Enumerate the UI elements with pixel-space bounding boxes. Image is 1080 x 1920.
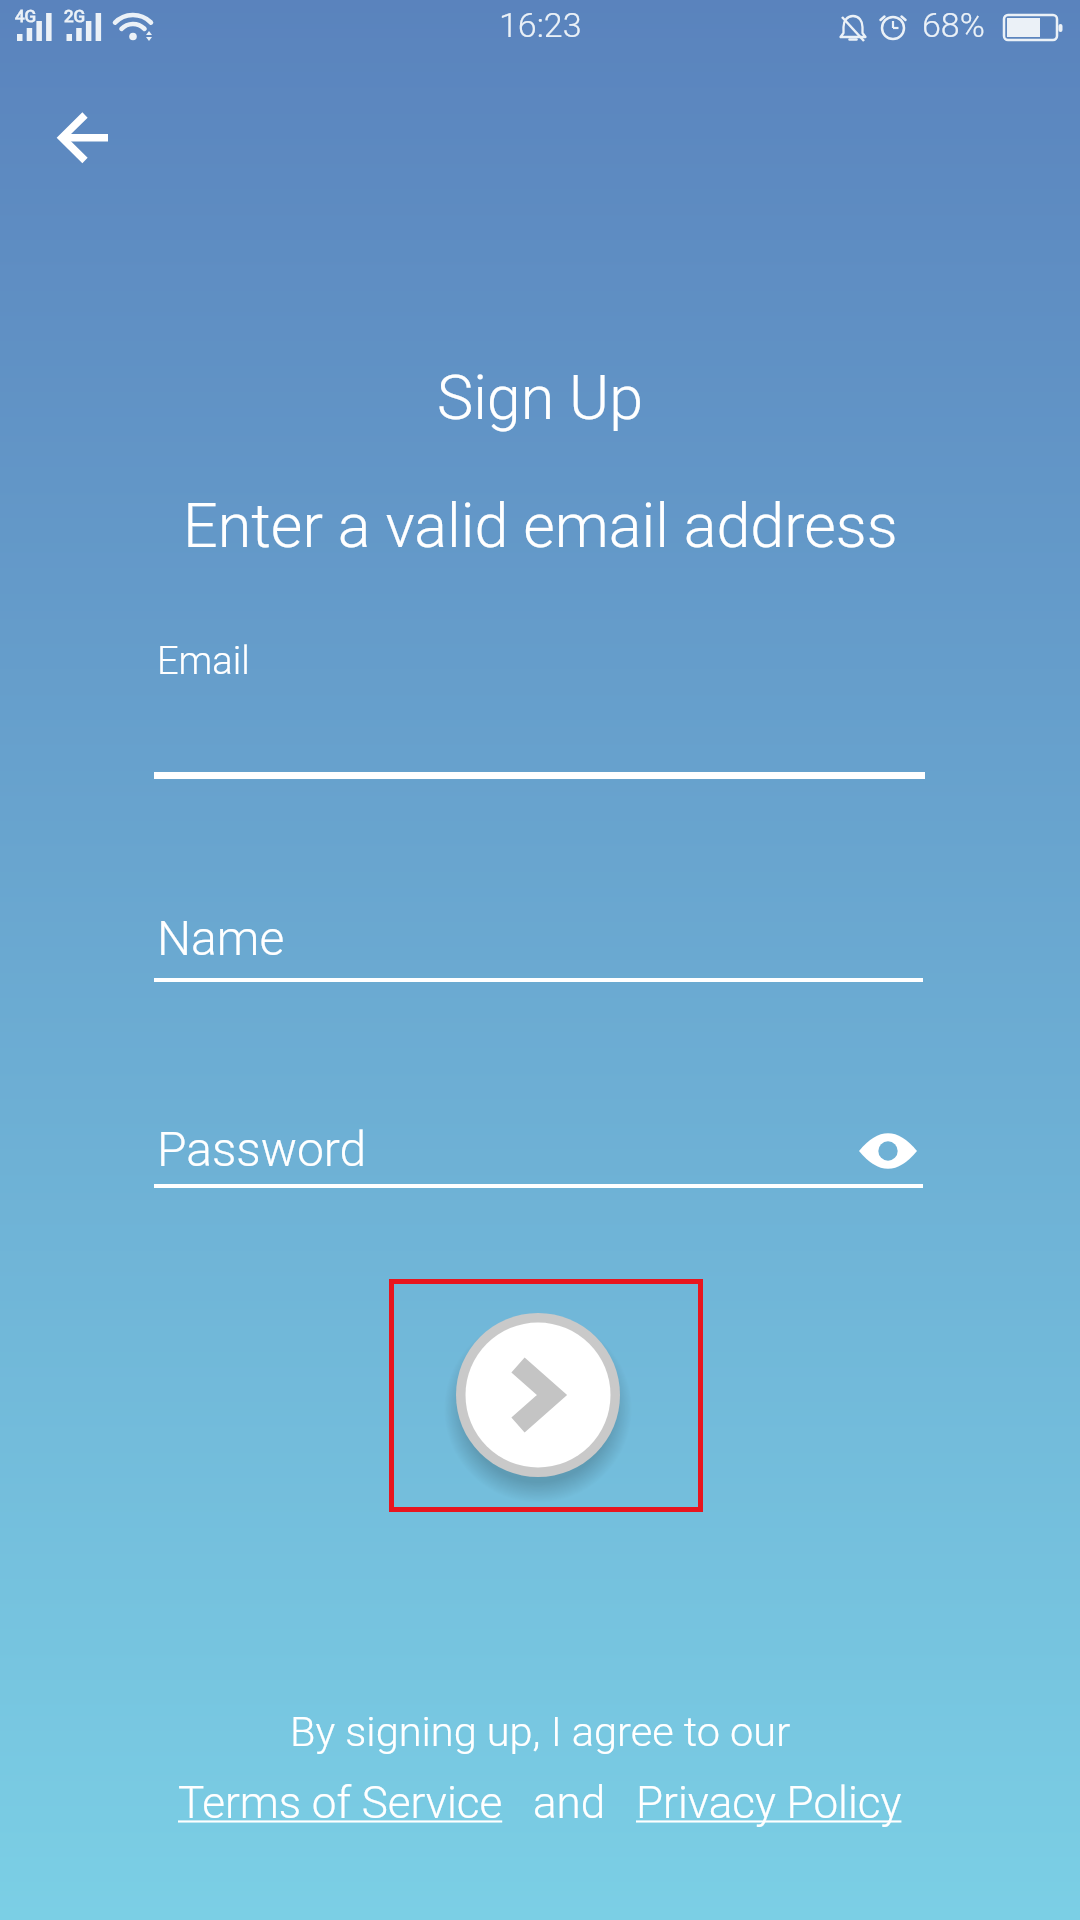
button[interactable]: Terms of Service [178, 1777, 503, 1829]
button[interactable]: Privacy Policy [636, 1777, 902, 1829]
staticText: Sign Up [437, 362, 644, 433]
staticText: Email [157, 639, 250, 684]
button[interactable]: Email [154, 630, 925, 779]
button[interactable] [857, 1128, 919, 1174]
staticText: Enter a valid email address [183, 490, 898, 561]
staticText: 4G [15, 6, 37, 26]
button[interactable] [456, 1313, 620, 1477]
staticText: Name [157, 910, 285, 966]
staticText: By signing up, I agree to our [290, 1707, 791, 1756]
staticText: and [533, 1777, 606, 1829]
button[interactable]: Name [154, 900, 923, 982]
button[interactable] [38, 92, 132, 184]
button[interactable]: Password [154, 1106, 923, 1188]
staticText: 68% [922, 5, 985, 45]
staticText: Password [157, 1121, 367, 1177]
staticText: 16:23 [499, 5, 582, 45]
staticText: 2G [64, 6, 86, 26]
